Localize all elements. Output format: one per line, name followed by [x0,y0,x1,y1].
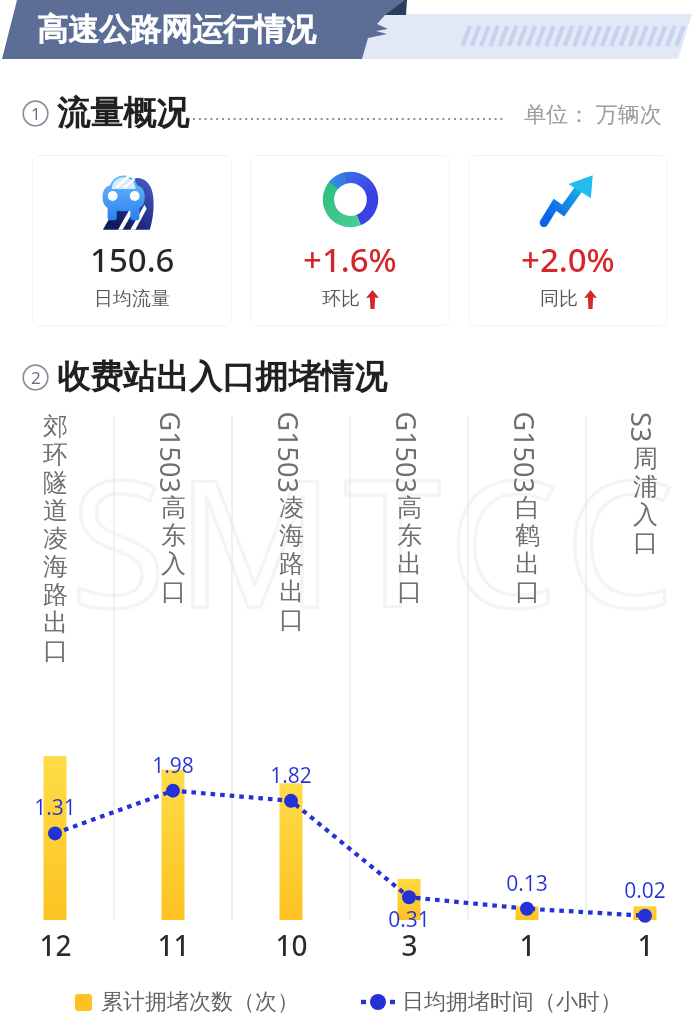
staticText: 出 [515,548,540,576]
staticText: 隧 [43,467,68,495]
staticText: 高速公路网运行情况 [37,10,316,49]
staticText: 白 [515,492,540,520]
staticText: 口 [43,635,68,663]
staticText: 东 [397,520,422,548]
button[interactable]: Year over year [468,155,668,326]
staticText: 东 [161,520,186,548]
staticText: SMTCC [70,420,685,658]
staticText: 0.31 [388,905,430,934]
staticText: 1 [31,102,41,125]
staticText: 0.02 [624,876,666,905]
staticText: 1 [519,926,536,964]
staticText: 流量概况 [57,92,189,134]
staticText: 2 [31,366,41,389]
staticText: 出 [279,576,304,604]
staticText: G1503 [512,411,542,492]
button[interactable]: Average daily traffic [32,155,232,326]
staticText: 路 [43,579,68,607]
staticText: 单位： 万辆次 [524,98,662,128]
staticText: 入 [161,548,186,576]
staticText: 12 [39,926,72,964]
staticText: 凌 [43,523,68,551]
staticText: 150.6 [90,237,175,282]
staticText: 环 [43,439,68,467]
staticText: 1.98 [152,751,194,780]
staticText: 10 [275,926,308,964]
staticText: S3 [630,412,660,443]
staticText: +2.0% [521,237,615,282]
staticText: 浦 [633,471,658,499]
staticText: +1.6% [303,237,397,282]
button[interactable]: 日均拥堵时间（小时） [356,984,626,1020]
staticText: 日均拥堵时间（小时） [402,988,622,1016]
staticText: G1503 [276,411,306,492]
staticText: 11 [157,926,190,964]
button[interactable]: 累计拥堵次数（次） [71,984,303,1020]
staticText: 1 [637,926,654,964]
staticText: 口 [161,576,186,604]
staticText: 周 [633,443,658,471]
staticText: 郊 [43,411,68,439]
staticText: 海 [43,551,68,579]
staticText: 海 [279,520,304,548]
staticText: 口 [515,576,540,604]
staticText: 同比 [540,287,578,311]
staticText: 入 [633,499,658,527]
staticText: 3 [401,926,418,964]
staticText: 口 [279,604,304,632]
staticText: 高 [161,492,186,520]
staticText: 鹤 [515,520,540,548]
staticText: 累计拥堵次数（次） [101,988,299,1016]
staticText: 0.13 [506,869,548,898]
staticText: 日均流量 [94,287,170,311]
staticText: 1.82 [270,761,312,790]
staticText: 道 [43,495,68,523]
button[interactable]: Month over month [250,155,450,326]
staticText: 环比 [322,287,360,311]
staticText: 收费站出入口拥堵情况 [57,356,387,398]
staticText: 凌 [279,492,304,520]
staticText: 1.31 [34,793,76,822]
staticText: 口 [633,527,658,555]
staticText: G1503 [158,411,188,492]
staticText: 出 [43,607,68,635]
staticText: 路 [279,548,304,576]
staticText: 出 [397,548,422,576]
staticText: 口 [397,576,422,604]
staticText: G1503 [394,411,424,492]
staticText: 高 [397,492,422,520]
